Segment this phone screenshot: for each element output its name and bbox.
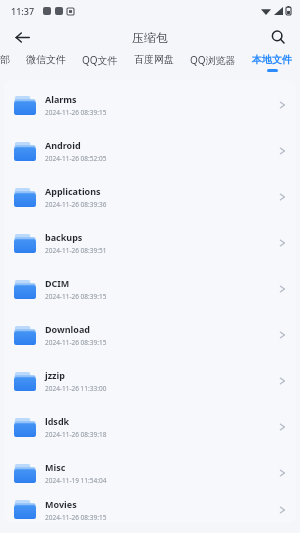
button[interactable]: Alarms [4,82,296,128]
staticText: 2024-11-26 08:39:15 [45,513,107,522]
button[interactable]: DCIM [4,266,296,312]
staticText: ldsdk [45,415,70,427]
staticText: 2024-11-26 08:39:18 [45,430,107,439]
staticText: Android [45,139,81,151]
button[interactable]: Search [262,21,294,53]
staticText: 百度网盘 [134,53,174,66]
staticText: backups [45,231,83,243]
staticText: QQ文件 [82,53,118,67]
staticText: 本地文件 [252,53,292,66]
staticText: DCIM [45,277,70,289]
staticText: Misc [45,461,66,473]
button[interactable]: Applications [4,174,296,220]
staticText: 2024-11-26 08:39:51 [45,246,107,255]
button[interactable]: 百度网盘 [134,53,174,69]
staticText: 2024-11-26 08:39:15 [45,292,107,301]
staticText: 2024-11-26 08:39:15 [45,108,107,117]
staticText: Download [45,323,90,335]
button[interactable]: Misc [4,450,296,496]
button[interactable]: Download [4,312,296,358]
staticText: 11:37 [11,5,35,17]
button[interactable]: 部 [0,53,10,69]
staticText: 2024-11-26 08:39:15 [45,338,107,347]
staticText: QQ浏览器 [190,53,236,67]
staticText: jzzip [45,369,65,381]
button[interactable]: QQ文件 [82,53,118,70]
staticText: Alarms [45,93,77,105]
staticText: 部 [0,53,10,66]
button[interactable]: backups [4,220,296,266]
button[interactable]: 微信文件 [26,53,66,69]
staticText: 压缩包 [132,30,168,45]
staticText: 微信文件 [26,53,66,66]
button[interactable]: jzzip [4,358,296,404]
staticText: 2024-11-26 11:33:00 [45,384,107,393]
staticText: 2024-11-26 08:52:05 [45,154,107,163]
staticText: 2024-11-26 08:39:36 [45,200,107,209]
button[interactable]: Android [4,128,296,174]
button[interactable]: ldsdk [4,404,296,450]
button[interactable]: Movies [4,496,296,523]
staticText: Movies [45,498,77,510]
button[interactable]: QQ浏览器 [190,53,236,70]
button[interactable]: 本地文件 [252,53,292,72]
staticText: 2024-11-19 11:54:04 [45,476,107,485]
button[interactable]: Back [6,21,38,53]
staticText: Applications [45,185,101,197]
